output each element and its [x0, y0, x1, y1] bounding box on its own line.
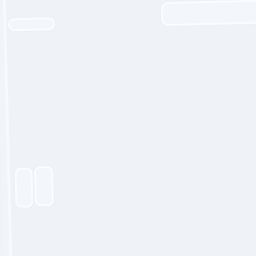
button[interactable]: First card	[13, 165, 31, 205]
button[interactable]: Back	[11, 15, 58, 28]
